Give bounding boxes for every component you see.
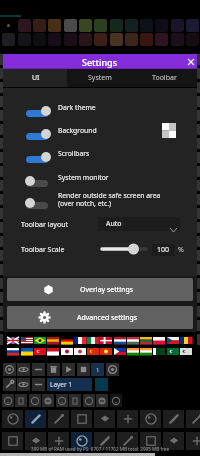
button[interactable] — [33, 19, 46, 32]
button[interactable]: Tool 11 — [25, 432, 46, 450]
button[interactable] — [100, 348, 112, 355]
button[interactable] — [74, 348, 86, 355]
button[interactable]: Auto — [98, 217, 180, 231]
button[interactable] — [127, 337, 139, 344]
button[interactable]: Tool 5 — [94, 410, 115, 428]
button[interactable]: Layer option 2 — [17, 378, 30, 391]
button[interactable]: Tool 9 — [186, 410, 200, 428]
button[interactable] — [64, 19, 77, 32]
button[interactable] — [34, 337, 46, 344]
button[interactable] — [155, 33, 168, 46]
button[interactable]: Close — [184, 54, 197, 69]
button[interactable]: Layer action 2 — [17, 363, 30, 376]
button[interactable] — [87, 348, 99, 355]
button[interactable] — [94, 19, 107, 32]
button[interactable] — [125, 19, 138, 32]
button[interactable] — [186, 19, 199, 32]
button[interactable] — [34, 348, 46, 355]
button[interactable] — [180, 348, 192, 355]
button[interactable] — [153, 348, 165, 355]
button[interactable]: Layer action 5 — [62, 363, 75, 376]
button[interactable]: Menu 8 — [96, 394, 108, 407]
button[interactable] — [61, 337, 73, 344]
button[interactable] — [140, 33, 153, 46]
button[interactable] — [167, 337, 179, 344]
button[interactable]: Tool 17 — [163, 432, 184, 450]
button[interactable] — [162, 123, 176, 138]
button[interactable] — [171, 33, 184, 46]
button[interactable] — [21, 348, 33, 355]
button[interactable] — [171, 19, 184, 32]
button[interactable]: Tool 15 — [117, 432, 138, 450]
button[interactable]: Tool 13 — [71, 432, 92, 450]
button[interactable]: Layer action 7 — [91, 363, 104, 376]
button[interactable]: Menu 9 — [110, 394, 122, 407]
button[interactable] — [125, 33, 138, 46]
button[interactable]: Layer action 6 — [77, 363, 90, 376]
button[interactable] — [79, 33, 92, 46]
button[interactable]: Tool 3 — [48, 410, 69, 428]
button[interactable] — [100, 337, 112, 344]
button[interactable]: Dark theme — [22, 98, 192, 116]
button[interactable]: Layer 1 — [47, 378, 92, 391]
button[interactable] — [153, 337, 165, 344]
button[interactable] — [47, 337, 59, 344]
button[interactable]: Render outside safe screen area (over no… — [22, 190, 192, 208]
button[interactable] — [114, 348, 126, 355]
button[interactable] — [47, 348, 59, 355]
button[interactable]: Tool 2 — [25, 410, 46, 428]
button[interactable]: Menu 1 — [2, 394, 14, 407]
button[interactable]: Menu 5 — [56, 394, 68, 407]
button[interactable] — [167, 348, 179, 355]
button[interactable] — [180, 337, 192, 344]
button[interactable]: Layer action 1 — [3, 363, 16, 376]
button[interactable] — [18, 19, 31, 32]
button[interactable] — [114, 337, 126, 344]
button[interactable]: Layer option 1 — [3, 378, 16, 391]
button[interactable] — [110, 33, 123, 46]
button[interactable]: Tool 14 — [94, 432, 115, 450]
button[interactable]: Menu 2 — [15, 394, 27, 407]
button[interactable] — [127, 348, 139, 355]
button[interactable]: Tool 7 — [140, 410, 161, 428]
button[interactable]: Tool 18 — [186, 432, 200, 450]
button[interactable]: Layer action 8 — [106, 363, 119, 376]
button[interactable]: System monitor — [22, 168, 192, 186]
button[interactable] — [61, 348, 73, 355]
button[interactable]: Toolbar — [132, 69, 197, 87]
button[interactable]: Tool 10 — [2, 432, 23, 450]
button[interactable] — [2, 33, 15, 46]
button[interactable]: Advanced settings — [7, 306, 193, 329]
button[interactable]: Background — [22, 121, 192, 139]
button[interactable] — [2, 19, 15, 32]
button[interactable]: Scrollbars — [22, 144, 192, 162]
button[interactable]: Tool 4 — [71, 410, 92, 428]
button[interactable] — [48, 19, 61, 32]
button[interactable]: Tool 12 — [48, 432, 69, 450]
button[interactable]: Tool 1 — [2, 410, 23, 428]
button[interactable]: Layer action 3 — [32, 363, 45, 376]
button[interactable]: Overlay settings — [7, 278, 193, 301]
button[interactable]: System — [67, 69, 132, 87]
button[interactable] — [140, 337, 152, 344]
button[interactable]: Menu 4 — [42, 394, 54, 407]
button[interactable]: Layer option 3 — [32, 378, 45, 391]
button[interactable] — [74, 337, 86, 344]
button[interactable] — [94, 33, 107, 46]
button[interactable]: UI — [3, 69, 68, 87]
button[interactable]: Menu 6 — [69, 394, 81, 407]
button[interactable] — [87, 337, 99, 344]
button[interactable]: Menu 7 — [83, 394, 95, 407]
button[interactable] — [79, 19, 92, 32]
button[interactable] — [100, 240, 150, 258]
button[interactable] — [110, 19, 123, 32]
button[interactable]: Layer action 4 — [47, 363, 60, 376]
